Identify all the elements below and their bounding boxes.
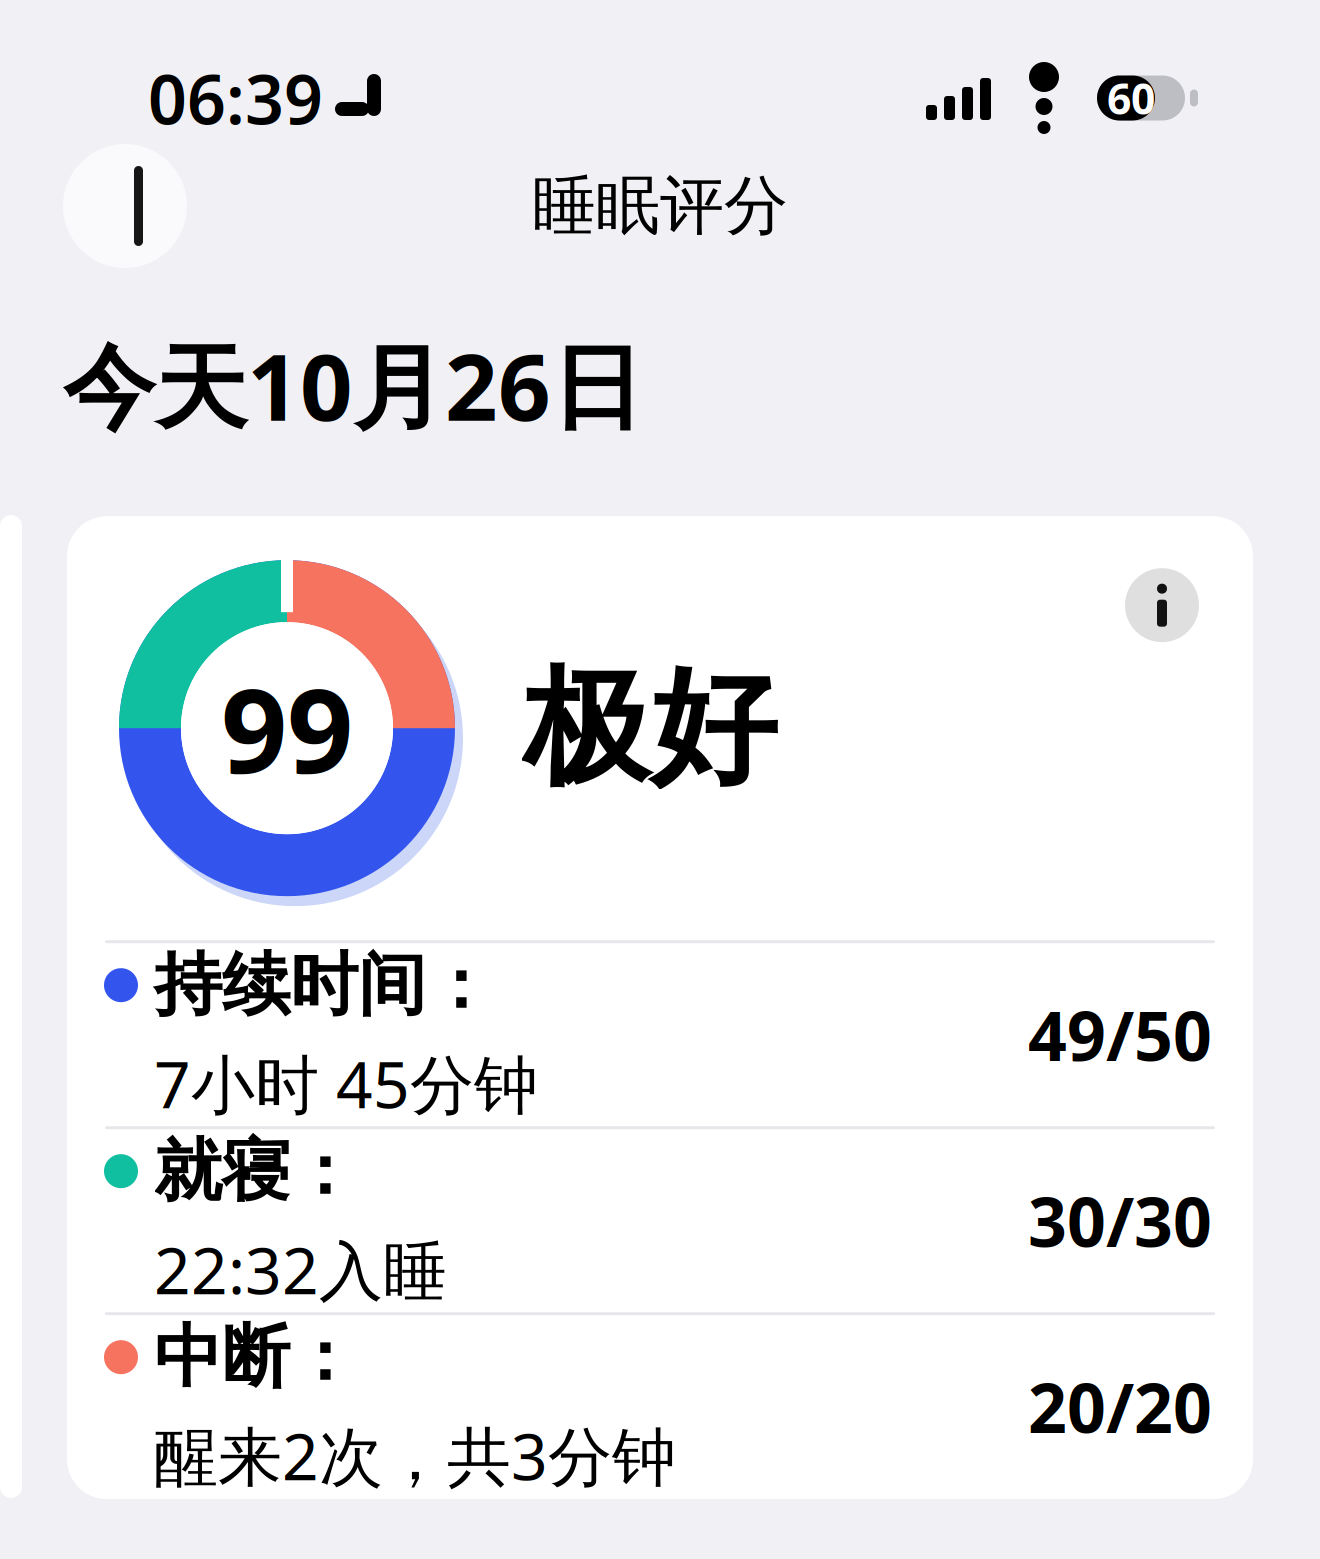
staticText: 睡眠评分 <box>532 167 788 245</box>
staticText: 06:39 <box>148 53 323 143</box>
staticText: 60 <box>1107 70 1155 126</box>
button[interactable]: 返回 <box>63 144 187 268</box>
staticText: 醒来2次，共3分钟 <box>154 1413 676 1498</box>
staticText: 极好 <box>523 650 777 806</box>
staticText: 20/20 <box>1028 1361 1212 1452</box>
staticText: 49/50 <box>1028 989 1212 1080</box>
staticText: 就寝： <box>154 1129 358 1213</box>
staticText: 持续时间： <box>154 943 494 1027</box>
button[interactable]: 评分说明 <box>1125 568 1199 642</box>
staticText: 中断： <box>154 1315 358 1399</box>
staticText: 7小时 45分钟 <box>154 1041 538 1126</box>
staticText: 今天10月26日 <box>63 324 643 446</box>
staticText: 30/30 <box>1028 1175 1212 1266</box>
staticText: 99 <box>221 651 353 805</box>
staticText: 22:32入睡 <box>154 1227 447 1312</box>
